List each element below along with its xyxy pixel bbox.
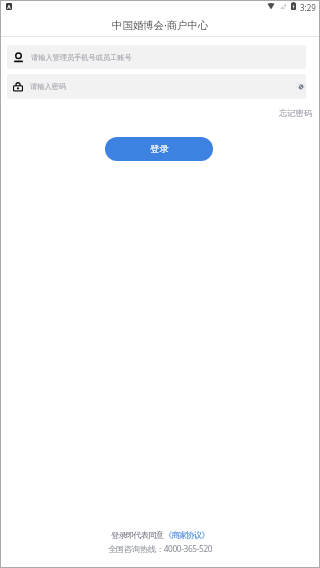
staticText: 中国婚博会·商户中心 xyxy=(112,18,209,32)
staticText: 请输入管理员手机号或员工账号 xyxy=(31,53,299,62)
button[interactable]: 《商家协议》 xyxy=(164,530,209,540)
button[interactable]: 请输入密码 xyxy=(7,74,306,99)
button[interactable]: Show password xyxy=(289,78,305,96)
button[interactable]: 忘记密码 xyxy=(264,103,320,121)
staticText: 请输入密码 xyxy=(30,82,289,91)
button[interactable]: 登录 xyxy=(105,137,213,161)
staticText: 全国咨询热线：4000-365-520 xyxy=(108,543,213,554)
staticText: 3:29 xyxy=(300,2,316,13)
staticText: 登录 xyxy=(150,143,169,155)
staticText: 《商家协议》 xyxy=(164,530,209,540)
staticText: 登录即代表同意 xyxy=(111,530,164,540)
staticText: 忘记密码 xyxy=(279,108,313,118)
button[interactable]: 请输入管理员手机号或员工账号 xyxy=(7,45,306,69)
